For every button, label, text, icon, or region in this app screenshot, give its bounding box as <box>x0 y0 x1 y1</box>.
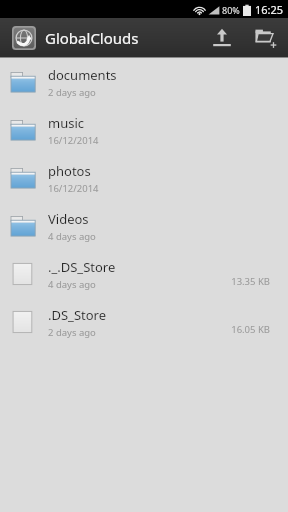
staticText: 16/12/2014 <box>48 134 99 147</box>
button[interactable]: music <box>0 106 288 154</box>
button[interactable]: .DS_Store <box>0 298 288 346</box>
staticText: 16:25 <box>255 2 284 17</box>
button[interactable]: Upload <box>200 18 244 57</box>
staticText: Videos <box>48 210 89 228</box>
staticText: 16/12/2014 <box>48 182 99 195</box>
staticText: 16.05 KB <box>231 323 270 336</box>
staticText: music <box>48 114 85 132</box>
button[interactable]: ._.DS_Store <box>0 250 288 298</box>
button[interactable]: photos <box>0 154 288 202</box>
staticText: .DS_Store <box>48 306 107 324</box>
staticText: 4 days ago <box>48 230 96 243</box>
button[interactable]: New folder <box>244 18 288 57</box>
button[interactable]: Videos <box>0 202 288 250</box>
staticText: 13.35 KB <box>231 275 270 288</box>
button[interactable]: documents <box>0 58 288 106</box>
staticText: 80% <box>222 4 240 16</box>
staticText: ._.DS_Store <box>48 258 116 276</box>
staticText: 2 days ago <box>48 326 96 339</box>
staticText: 4 days ago <box>48 278 96 291</box>
staticText: documents <box>48 66 117 84</box>
staticText: 2 days ago <box>48 86 96 99</box>
staticText: GlobalClouds <box>45 28 139 48</box>
staticText: photos <box>48 162 91 180</box>
